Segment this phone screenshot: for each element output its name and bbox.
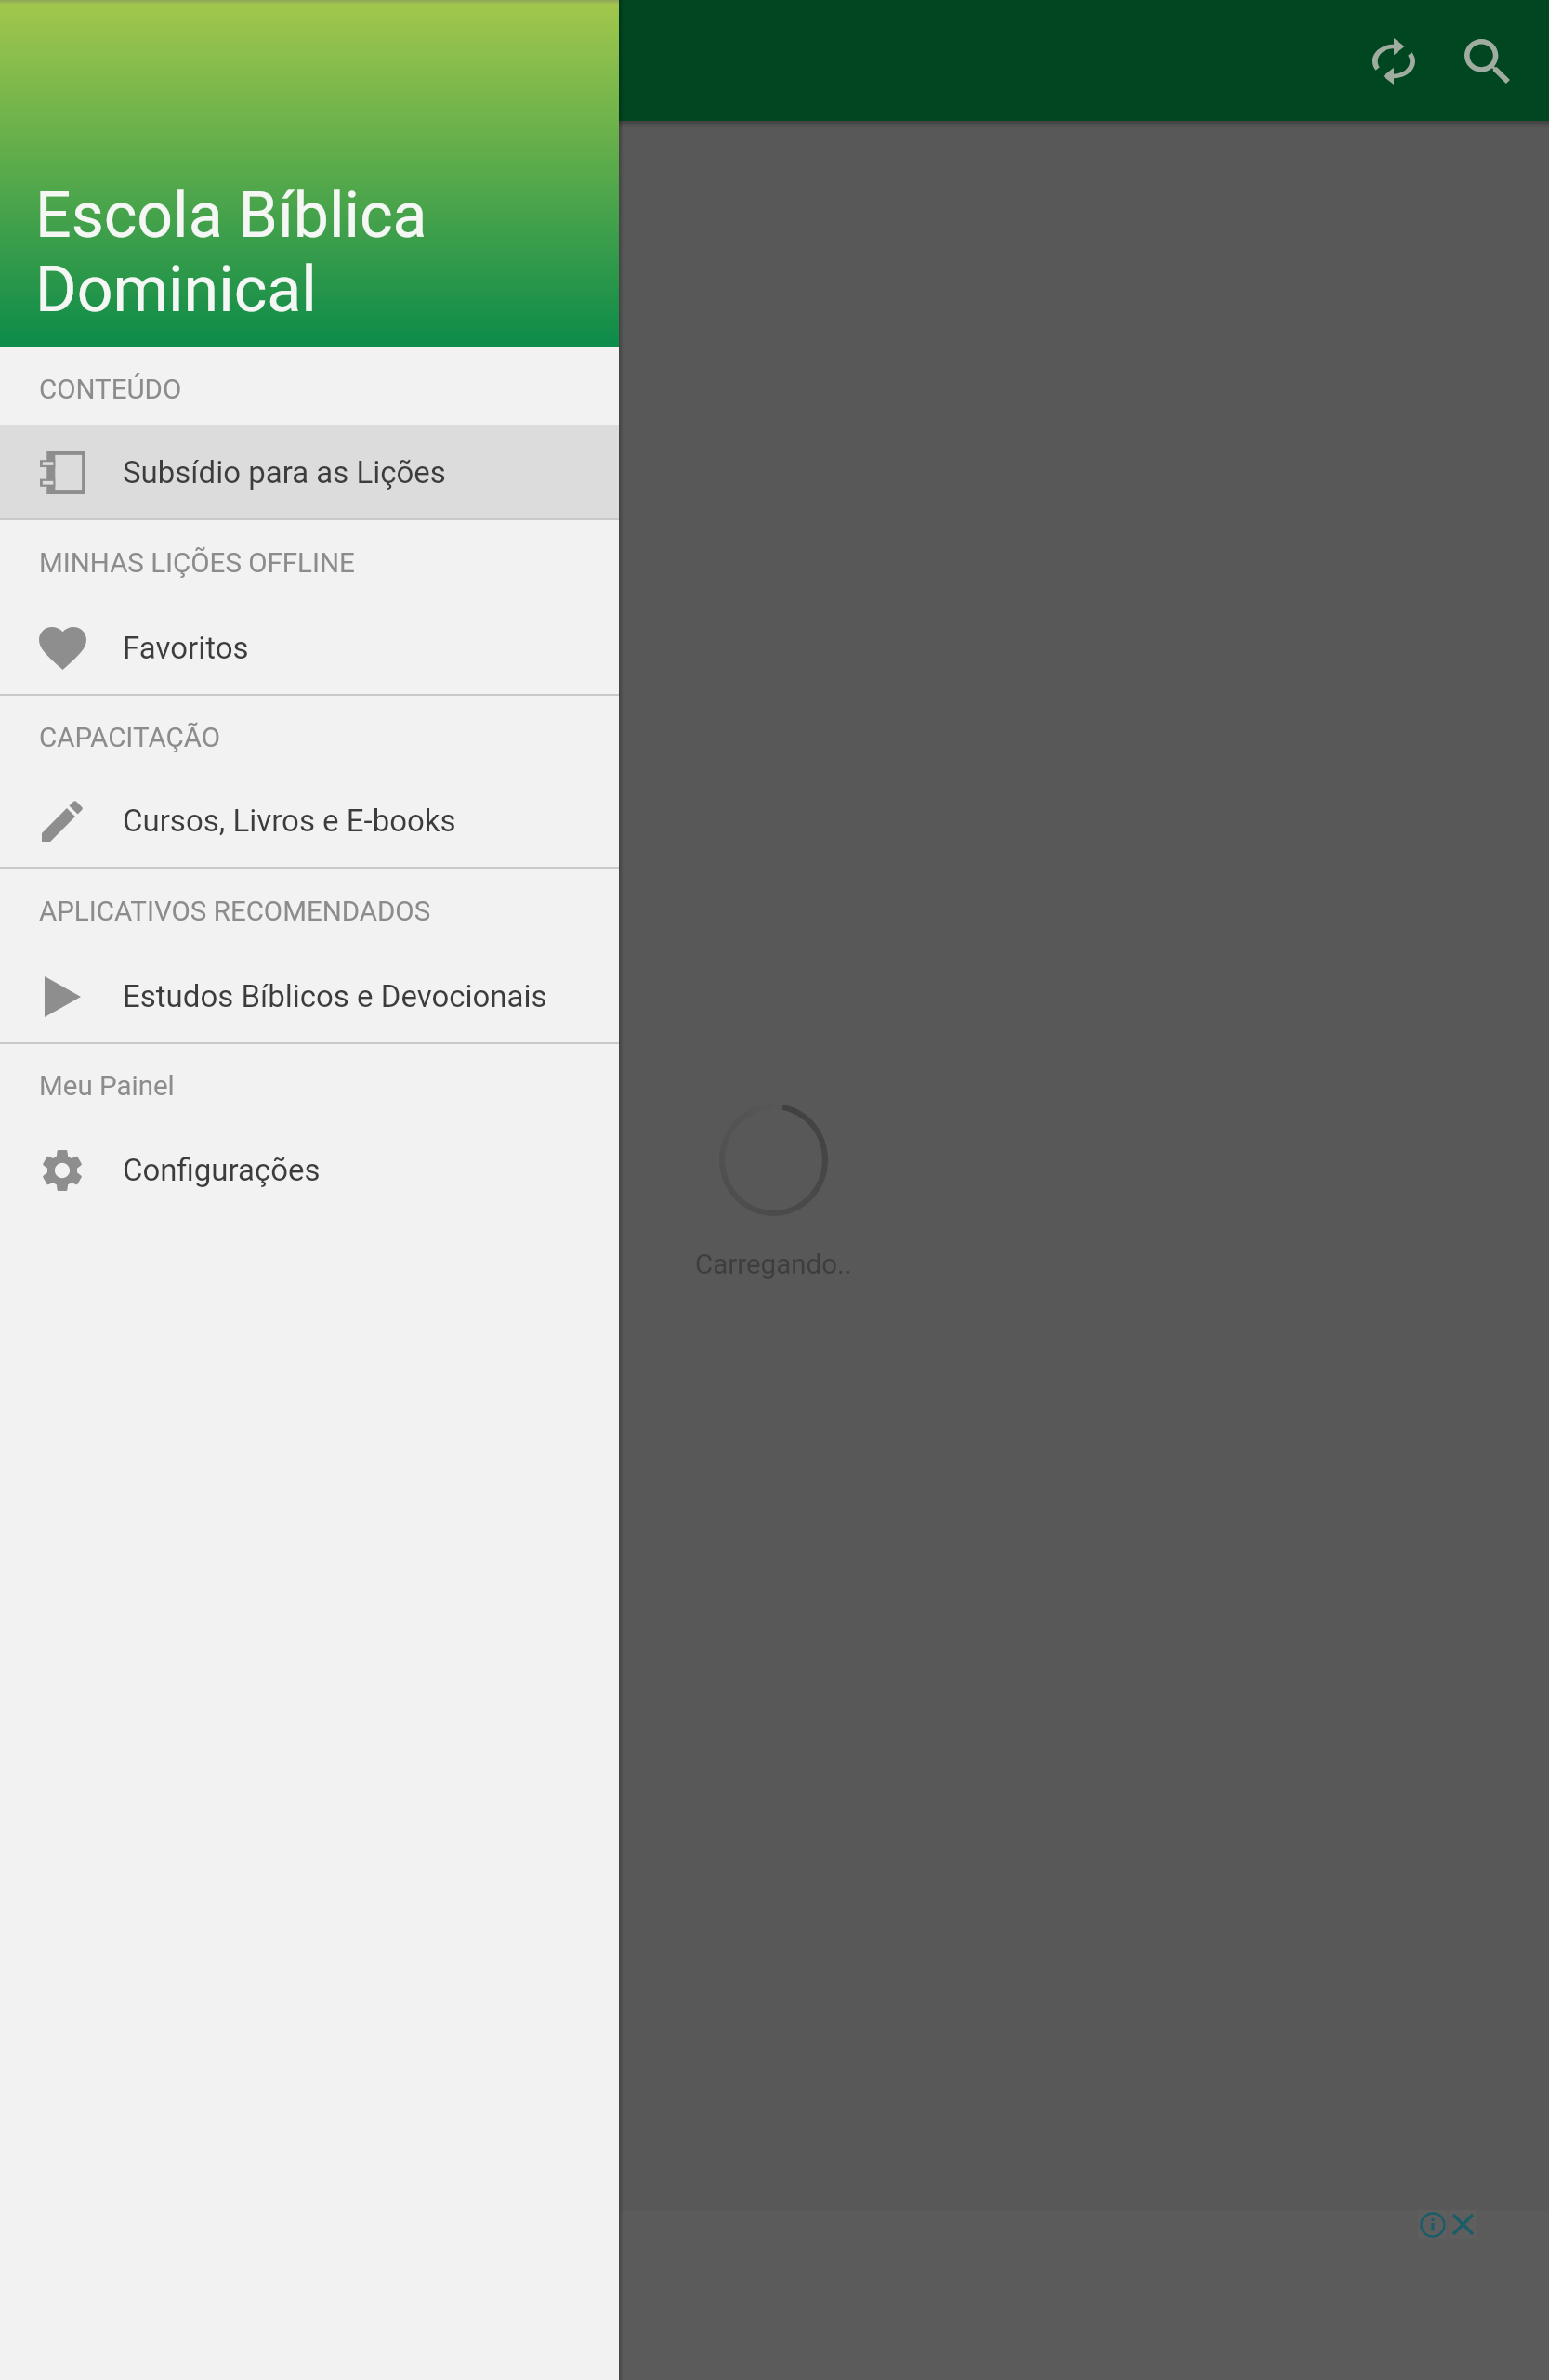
staticText: Carregando..	[695, 1249, 852, 1281]
button[interactable]: Fechar anúncio	[1449, 2210, 1477, 2239]
staticText: Favoritos	[123, 630, 249, 666]
staticText: APLICATIVOS RECOMENDADOS	[39, 896, 431, 928]
button[interactable]: Configurações	[0, 1123, 619, 1216]
button[interactable]: Favoritos	[0, 601, 619, 694]
staticText: Escola Bíblica Dominical	[35, 178, 427, 327]
button[interactable]: Estudos Bíblicos e Devocionais	[0, 949, 619, 1042]
staticText: CONTEÚDO	[39, 373, 182, 406]
staticText: MINHAS LIÇÕES OFFLINE	[39, 547, 355, 580]
button[interactable]: Pesquisar	[1451, 26, 1523, 97]
staticText: CAPACITAÇÃO	[39, 722, 221, 754]
staticText: Configurações	[123, 1152, 321, 1188]
staticText: Cursos, Livros e E-books	[123, 803, 456, 839]
button[interactable]: Subsídio para as Lições	[0, 425, 619, 518]
button[interactable]: Atualizar	[1359, 25, 1428, 98]
button[interactable]: Cursos, Livros e E-books	[0, 774, 619, 867]
staticText: Subsídio para as Lições	[123, 454, 446, 490]
staticText: Meu Painel	[39, 1070, 175, 1103]
button[interactable]: Informações do anúncio	[1418, 2210, 1447, 2239]
staticText: Estudos Bíblicos e Devocionais	[123, 978, 547, 1014]
